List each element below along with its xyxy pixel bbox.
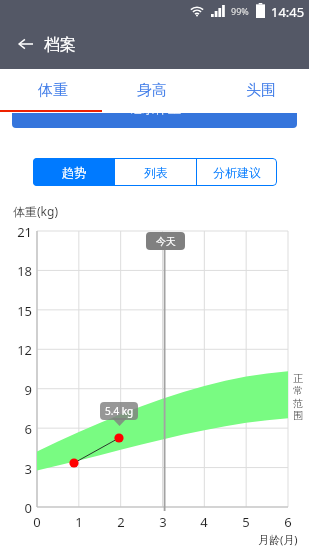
staticText: 常 bbox=[293, 384, 303, 397]
staticText: 14:45 bbox=[271, 3, 305, 21]
staticText: 0 bbox=[22, 513, 52, 531]
staticText: 6 bbox=[273, 513, 303, 531]
staticText: 趋势 bbox=[62, 165, 86, 180]
staticText: 9 bbox=[2, 381, 32, 399]
staticText: 1 bbox=[64, 513, 94, 531]
staticText: 正 bbox=[293, 372, 303, 385]
staticText: 范 bbox=[293, 397, 303, 410]
staticText: 5.4 kg bbox=[105, 404, 134, 418]
staticText: 3 bbox=[148, 513, 178, 531]
staticText: 4 bbox=[189, 513, 219, 531]
staticText: 2 bbox=[106, 513, 136, 531]
staticText: 15 bbox=[2, 302, 32, 320]
staticText: 列表 bbox=[144, 165, 168, 180]
staticText: 分析建议 bbox=[213, 165, 261, 180]
button[interactable]: 记录体重 bbox=[12, 113, 297, 128]
staticText: 5 bbox=[231, 513, 261, 531]
staticText: 6 bbox=[2, 420, 32, 438]
staticText: 12 bbox=[2, 341, 32, 359]
staticText: 月龄(月) bbox=[258, 532, 298, 547]
button[interactable]: 列表 bbox=[115, 158, 196, 186]
button[interactable]: 分析建议 bbox=[197, 158, 277, 186]
staticText: 21 bbox=[2, 223, 32, 241]
staticText: 体重(kg) bbox=[13, 203, 58, 219]
staticText: 今天 bbox=[156, 235, 176, 248]
staticText: 18 bbox=[2, 262, 32, 280]
staticText: 档案 bbox=[44, 35, 76, 55]
staticText: 身高 bbox=[137, 81, 167, 100]
staticText: 头围 bbox=[246, 81, 276, 100]
button[interactable]: 头围 bbox=[211, 69, 309, 112]
staticText: 0 bbox=[2, 499, 32, 517]
staticText: 围 bbox=[293, 409, 303, 422]
button[interactable]: 体重 bbox=[3, 69, 103, 112]
button[interactable]: Back bbox=[8, 26, 42, 62]
button[interactable]: 身高 bbox=[102, 69, 202, 112]
staticText: 体重 bbox=[38, 81, 68, 100]
staticText: 3 bbox=[2, 460, 32, 478]
staticText: 记录体重 bbox=[129, 113, 181, 115]
button[interactable]: 趋势 bbox=[33, 158, 114, 186]
staticText: 99% bbox=[231, 5, 249, 17]
